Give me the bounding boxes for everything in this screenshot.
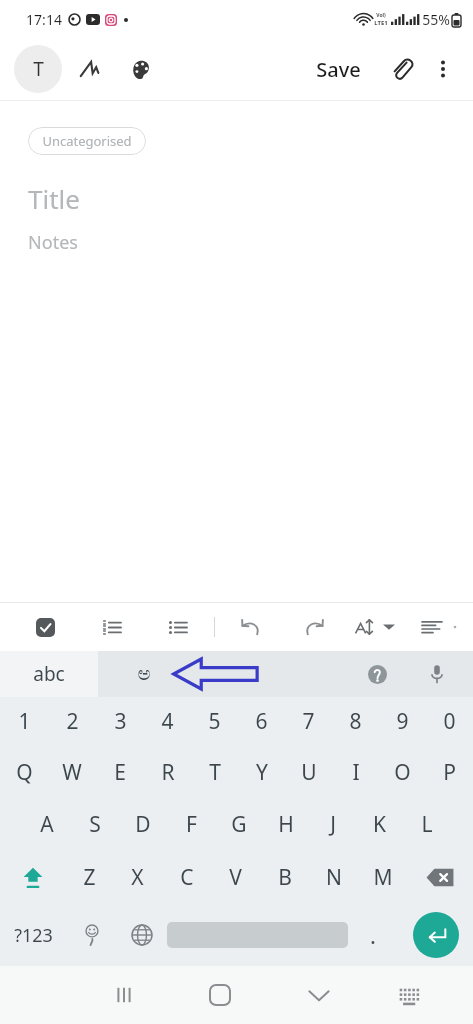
button[interactable]: G xyxy=(215,798,262,850)
staticText: I xyxy=(352,758,360,787)
button[interactable]: A xyxy=(23,798,71,850)
button[interactable]: Z xyxy=(65,850,113,904)
button[interactable]: T xyxy=(191,746,238,798)
button[interactable]: K xyxy=(356,798,403,850)
staticText: D xyxy=(135,810,151,839)
staticText: 0 xyxy=(443,707,456,736)
staticText: 55% xyxy=(422,10,450,29)
staticText: L xyxy=(421,810,433,839)
button[interactable]: 8 xyxy=(332,697,379,746)
button[interactable]: Backspace xyxy=(407,850,473,904)
button[interactable]: Emoji xyxy=(66,904,117,966)
staticText: 4 xyxy=(161,707,174,736)
staticText: Title xyxy=(28,181,80,216)
staticText: S xyxy=(89,810,101,839)
staticText: 8 xyxy=(349,707,362,736)
staticText: LTE1 xyxy=(374,19,388,27)
button[interactable]: S xyxy=(71,798,119,850)
staticText: Notes xyxy=(28,230,78,255)
button[interactable]: 3 xyxy=(96,697,144,746)
button[interactable]: Draw xyxy=(68,47,112,91)
button[interactable]: V xyxy=(211,850,260,904)
button[interactable]: Uncategorised xyxy=(28,127,146,155)
button[interactable]: 5 xyxy=(191,697,238,746)
button[interactable]: R xyxy=(144,746,191,798)
staticText: F xyxy=(186,810,197,839)
staticText: W xyxy=(62,758,82,787)
staticText: 9 xyxy=(396,707,409,736)
button[interactable]: Undo xyxy=(231,608,269,646)
button[interactable]: M xyxy=(358,850,407,904)
staticText: Save xyxy=(316,56,361,83)
button[interactable]: Shift xyxy=(0,850,65,904)
button[interactable]: More options xyxy=(423,49,463,89)
button[interactable]: Numbered list xyxy=(92,608,130,646)
button[interactable]: X xyxy=(113,850,162,904)
button[interactable]: Language xyxy=(122,652,166,696)
button[interactable]: Space xyxy=(167,904,348,966)
button[interactable]: W xyxy=(48,746,96,798)
staticText: E xyxy=(114,758,126,787)
button[interactable]: Text size xyxy=(353,612,397,642)
button[interactable]: D xyxy=(119,798,167,850)
button[interactable]: Bulleted list xyxy=(158,608,196,646)
staticText: U xyxy=(301,758,317,787)
button[interactable]: . xyxy=(348,904,398,966)
button[interactable]: Enter xyxy=(398,904,473,966)
button[interactable]: U xyxy=(285,746,332,798)
button[interactable]: 6 xyxy=(238,697,285,746)
button[interactable]: 0 xyxy=(426,697,473,746)
button[interactable]: Align xyxy=(413,608,451,646)
button[interactable]: Home xyxy=(168,966,271,1024)
button[interactable]: Attach xyxy=(381,49,421,89)
button[interactable]: Q xyxy=(0,746,48,798)
staticText: 5 xyxy=(208,707,221,736)
button[interactable]: B xyxy=(260,850,309,904)
button[interactable]: Y xyxy=(238,746,285,798)
button[interactable]: Checklist xyxy=(26,608,64,646)
button[interactable]: 4 xyxy=(144,697,191,746)
staticText: K xyxy=(373,810,386,839)
button[interactable]: 1 xyxy=(0,697,48,746)
staticText: ?123 xyxy=(14,923,53,948)
button[interactable]: L xyxy=(403,798,450,850)
button[interactable]: P xyxy=(426,746,473,798)
button[interactable]: 9 xyxy=(379,697,426,746)
button[interactable]: 7 xyxy=(285,697,332,746)
staticText: O xyxy=(394,758,411,787)
button[interactable]: abc xyxy=(0,651,98,697)
staticText: Vol) xyxy=(376,12,386,19)
button[interactable]: C xyxy=(162,850,211,904)
button[interactable]: Recent apps xyxy=(80,966,168,1024)
button[interactable]: Help xyxy=(357,654,397,694)
staticText: P xyxy=(443,758,456,787)
staticText: V xyxy=(229,863,242,892)
staticText: N xyxy=(326,863,342,892)
staticText: R xyxy=(161,758,175,787)
staticText: T xyxy=(33,56,44,82)
button[interactable]: Save xyxy=(308,50,369,89)
button[interactable]: J xyxy=(309,798,356,850)
button[interactable]: H xyxy=(262,798,309,850)
staticText: 6 xyxy=(255,707,268,736)
staticText: H xyxy=(278,810,294,839)
staticText: Y xyxy=(256,758,268,787)
staticText: 17:14 xyxy=(26,10,62,29)
staticText: X xyxy=(131,863,144,892)
button[interactable]: Hide keyboard xyxy=(271,966,366,1024)
button[interactable]: Switch keyboard xyxy=(366,966,453,1024)
button[interactable]: Redo xyxy=(295,608,333,646)
button[interactable]: F xyxy=(167,798,215,850)
button[interactable]: I xyxy=(332,746,379,798)
button[interactable]: E xyxy=(96,746,144,798)
button[interactable]: O xyxy=(379,746,426,798)
button[interactable]: Change language xyxy=(117,904,167,966)
button[interactable]: N xyxy=(309,850,358,904)
button[interactable]: 2 xyxy=(48,697,96,746)
button[interactable]: ?123 xyxy=(0,904,66,966)
button[interactable]: Text mode xyxy=(14,45,62,93)
staticText: B xyxy=(278,863,292,892)
button[interactable]: Palette xyxy=(118,47,162,91)
staticText: C xyxy=(180,863,194,892)
button[interactable]: Voice input xyxy=(417,654,457,694)
